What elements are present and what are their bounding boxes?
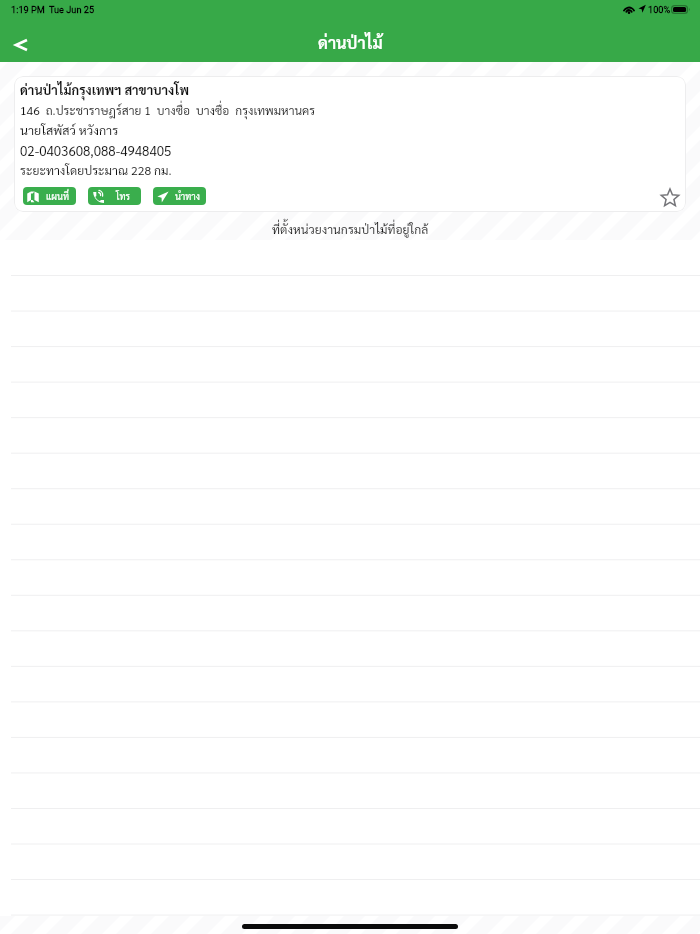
button[interactable]: ด่านป่าไม้กรุงเทพฯ สาขาบางโพ bbox=[14, 76, 686, 212]
staticText: ด่านป่าไม้กรุงเทพฯ สาขาบางโพ bbox=[20, 81, 189, 98]
staticText: โทร bbox=[116, 190, 130, 202]
button[interactable]: นำทาง bbox=[153, 187, 206, 205]
staticText: ระยะทางโดยประมาณ 228 กม. bbox=[20, 162, 172, 178]
staticText: นายโสพัสว์ หวังการ bbox=[20, 122, 119, 138]
button[interactable]: แผนที่ bbox=[23, 187, 76, 205]
staticText: ด่านป่าไม้ bbox=[318, 32, 383, 53]
staticText: 146 ถ.ประชาราษฎร์สาย 1 บางซื่อ บางซื่อ ก… bbox=[20, 102, 316, 118]
staticText: 1:19 PM bbox=[11, 4, 45, 15]
button[interactable]: Favorite bbox=[641, 175, 683, 212]
staticText: นำทาง bbox=[175, 190, 200, 202]
staticText: Tue Jun 25 bbox=[49, 4, 95, 15]
button[interactable]: โทร bbox=[88, 187, 141, 205]
button[interactable]: ที่ตั้งหน่วยงานกรมป่าไม้ที่อยู่ใกล้ bbox=[0, 212, 700, 246]
staticText: ที่ตั้งหน่วยงานกรมป่าไม้ที่อยู่ใกล้ bbox=[272, 221, 429, 237]
staticText: 100% bbox=[648, 4, 671, 15]
staticText: 02-0403608,088-4948405 bbox=[20, 142, 172, 159]
button[interactable]: Back bbox=[0, 22, 44, 62]
staticText: แผนที่ bbox=[46, 190, 69, 202]
